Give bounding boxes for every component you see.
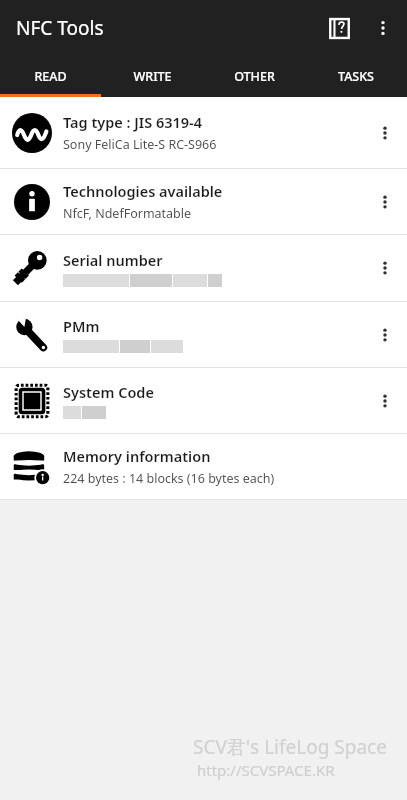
button[interactable]: More options: [363, 302, 407, 367]
staticText: OTHER: [234, 68, 275, 85]
button[interactable]: Technologies available: [0, 169, 407, 234]
button[interactable]: Serial number: [0, 235, 407, 301]
staticText: SCV君's LifeLog Space: [193, 734, 387, 760]
button[interactable]: More options: [363, 235, 407, 301]
button[interactable]: OTHER: [203, 56, 305, 97]
staticText: http://SCVSPACE.KR: [197, 760, 335, 780]
staticText: 224 bytes : 14 blocks (16 bytes each): [63, 470, 275, 487]
button[interactable]: More options: [363, 368, 407, 433]
staticText: System Code: [63, 382, 154, 402]
staticText: NfcF, NdefFormatable: [63, 205, 192, 222]
button[interactable]: More options: [363, 169, 407, 234]
staticText: Sony FeliCa Lite-S RC-S966: [63, 136, 217, 153]
staticText: Serial number: [63, 250, 163, 270]
button[interactable]: READ: [0, 56, 101, 97]
button[interactable]: Help: [317, 6, 361, 50]
staticText: Tag type : JIS 6319-4: [63, 112, 203, 132]
button[interactable]: More options: [361, 6, 405, 50]
staticText: Memory information: [63, 446, 211, 466]
button[interactable]: Memory information: [0, 434, 407, 499]
staticText: PMm: [63, 316, 100, 336]
staticText: READ: [34, 68, 67, 85]
button[interactable]: PMm: [0, 302, 407, 367]
staticText: WRITE: [133, 68, 172, 85]
button[interactable]: TASKS: [305, 56, 407, 97]
staticText: Technologies available: [63, 181, 223, 201]
button[interactable]: Tag type : JIS 6319-4: [0, 97, 407, 168]
button[interactable]: WRITE: [101, 56, 203, 97]
staticText: NFC Tools: [16, 15, 104, 41]
button[interactable]: System Code: [0, 368, 407, 433]
staticText: TASKS: [338, 68, 374, 85]
button[interactable]: More options: [363, 97, 407, 168]
